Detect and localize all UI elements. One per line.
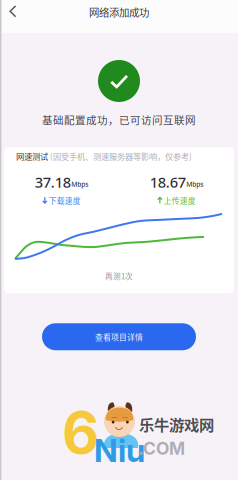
staticText: 18.67 — [150, 172, 186, 192]
staticText: 网速测试 — [16, 150, 48, 162]
staticText: .COM — [138, 438, 185, 459]
staticText: 网络添加成功 — [89, 4, 149, 20]
button[interactable]: Back — [0, 0, 26, 33]
staticText: 37.18 — [35, 172, 71, 192]
staticText: 下载速度 — [49, 195, 81, 206]
staticText: (因受手机、测速服务器等影响，仅参考) — [50, 150, 192, 162]
staticText: 再测1次 — [105, 270, 133, 281]
staticText: 6 — [62, 398, 99, 467]
staticText: Mbps — [186, 180, 203, 189]
staticText: 基础配置成功，已可访问互联网 — [42, 112, 196, 127]
staticText: Mbps — [71, 180, 88, 189]
button[interactable]: 查看项目详情 — [42, 323, 196, 350]
staticText: 查看项目详情 — [95, 331, 143, 342]
button[interactable]: 再测1次 — [4, 265, 234, 287]
staticText: 上传速度 — [164, 195, 196, 206]
staticText: Niu — [94, 431, 145, 470]
staticText: 乐牛游戏网 — [139, 413, 214, 435]
